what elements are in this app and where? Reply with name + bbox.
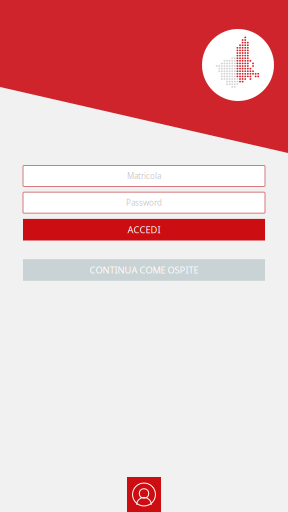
staticText: CONTINUA COME OSPITE — [89, 264, 198, 276]
button[interactable]: Account — [127, 477, 161, 512]
staticText: Password — [126, 197, 162, 208]
button[interactable]: ACCEDI — [23, 219, 265, 240]
button[interactable]: Matricola — [23, 165, 265, 186]
button[interactable]: CONTINUA COME OSPITE — [23, 259, 265, 281]
staticText: ACCEDI — [127, 223, 160, 236]
button[interactable]: Password — [23, 192, 265, 213]
staticText: Matricola — [127, 171, 161, 181]
